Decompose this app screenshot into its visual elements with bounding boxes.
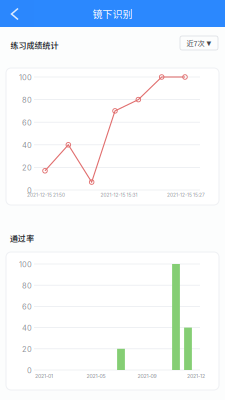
button[interactable]: 近7次 [180,36,218,50]
staticText: 60 [22,118,32,127]
staticText: ▾ [206,38,211,48]
staticText: 2021-09 [137,373,156,379]
button[interactable]: Back [0,0,34,27]
staticText: 100 [19,73,32,82]
staticText: 近7次 [186,38,204,48]
staticText: 2021-01 [35,373,53,379]
staticText: 60 [22,302,32,311]
staticText: 2021-12-15 15:27 [167,192,205,198]
staticText: 镜下识别 [92,6,132,21]
staticText: 20 [22,163,32,172]
staticText: 20 [22,345,32,354]
staticText: 通过率 [10,232,34,244]
staticText: 80 [22,281,32,290]
staticText: 2021-12-15 15:31 [100,192,137,198]
staticText: 40 [22,324,32,333]
staticText: 2021-12-15 21:50 [27,192,65,198]
staticText: 0 [27,186,32,195]
staticText: 80 [22,96,32,105]
staticText: 100 [19,260,32,269]
staticText: 2021-12 [187,373,205,379]
staticText: 40 [22,141,32,150]
staticText: 2021-05 [86,373,105,379]
staticText: 练习成绩统计 [10,39,58,51]
staticText: 0 [27,366,32,375]
